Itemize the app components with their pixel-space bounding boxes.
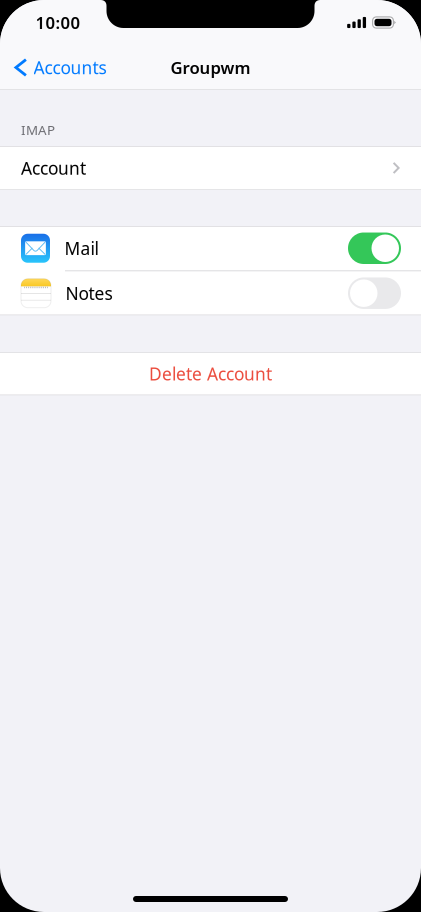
staticText: Account	[21, 156, 86, 180]
button[interactable]: Mail	[348, 232, 401, 264]
staticText: Groupwm	[170, 56, 250, 79]
staticText: Notes	[65, 281, 112, 305]
staticText: Accounts	[34, 56, 107, 79]
staticText: 10:00	[35, 11, 80, 34]
button[interactable]: Accounts	[0, 45, 117, 90]
staticText: Delete Account	[149, 362, 272, 385]
button[interactable]: Delete Account	[0, 352, 421, 395]
staticText: Mail	[64, 236, 98, 260]
staticText: IMAP	[21, 121, 55, 139]
button[interactable]: Notes	[348, 277, 401, 309]
button[interactable]: Account	[0, 146, 421, 190]
